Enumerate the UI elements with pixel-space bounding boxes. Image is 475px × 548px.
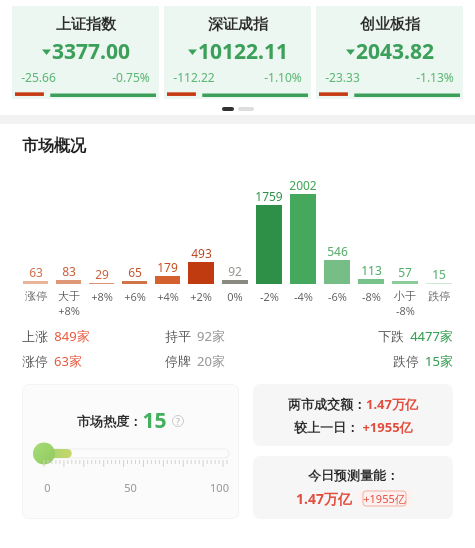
button[interactable]: 上证指数: [12, 6, 159, 99]
staticText: 15: [142, 406, 167, 435]
staticText: 15: [432, 266, 446, 282]
button[interactable]: 市场热度：: [22, 384, 239, 519]
staticText: 跌停: [428, 289, 450, 303]
button[interactable]: 两市成交额：: [253, 384, 453, 446]
staticText: 65: [128, 264, 142, 280]
staticText: 3377.00: [52, 37, 130, 66]
staticText: -4%: [294, 289, 313, 304]
staticText: 2002: [289, 177, 317, 193]
staticText: 63: [29, 264, 43, 280]
staticText: 下跌: [378, 328, 404, 344]
staticText: 92家: [197, 327, 225, 345]
staticText: 113: [361, 262, 382, 278]
staticText: 4477家: [410, 327, 453, 345]
staticText: 涨停: [25, 289, 47, 303]
staticText: -25.66: [21, 69, 56, 85]
staticText: -1.13%: [416, 69, 454, 85]
button[interactable]: 热度说明: [172, 415, 184, 427]
staticText: 市场热度：: [77, 413, 142, 429]
staticText: +2%: [190, 289, 212, 304]
button[interactable]: 深证成指: [164, 6, 311, 99]
staticText: 较上一日：: [294, 419, 359, 435]
staticText: -1.10%: [264, 69, 302, 85]
staticText: -112.22: [173, 69, 215, 85]
staticText: -0.75%: [112, 69, 150, 85]
staticText: 29: [95, 266, 109, 282]
staticText: -23.33: [325, 69, 360, 85]
staticText: 1.47万亿: [296, 489, 352, 508]
staticText: 50: [124, 480, 137, 495]
staticText: +8%: [58, 303, 80, 318]
staticText: 2043.82: [356, 37, 434, 66]
staticText: 83: [62, 263, 76, 279]
staticText: 92: [228, 263, 242, 279]
staticText: 15家: [425, 352, 453, 370]
staticText: ?: [176, 416, 180, 427]
staticText: 两市成交额：: [288, 396, 366, 412]
staticText: +8%: [91, 289, 113, 304]
staticText: 63家: [54, 352, 82, 370]
staticText: 上证指数: [56, 15, 116, 34]
staticText: 20家: [197, 352, 225, 370]
staticText: 今日预测量能：: [308, 467, 399, 483]
staticText: 849家: [54, 327, 90, 345]
staticText: 上涨: [22, 328, 48, 344]
staticText: 持平: [165, 328, 191, 344]
staticText: 493: [191, 245, 212, 261]
staticText: 创业板指: [360, 15, 420, 34]
staticText: 179: [157, 259, 178, 275]
staticText: -2%: [260, 289, 279, 304]
staticText: 10122.11: [198, 37, 288, 66]
staticText: 深证成指: [208, 15, 268, 34]
staticText: 57: [398, 264, 412, 280]
staticText: 546: [327, 243, 348, 259]
staticText: +1955亿: [362, 418, 413, 436]
staticText: 大于: [58, 289, 80, 303]
staticText: 跌停: [393, 353, 419, 369]
staticText: -6%: [328, 289, 347, 304]
staticText: 市场概况: [22, 136, 86, 156]
button[interactable]: 今日预测量能：: [253, 456, 453, 519]
staticText: 0%: [227, 289, 243, 304]
staticText: +1955亿: [363, 491, 406, 506]
staticText: 1759: [255, 188, 283, 204]
button[interactable]: 创业板指: [316, 6, 463, 99]
staticText: 小于: [394, 289, 416, 303]
staticText: -8%: [362, 289, 381, 304]
staticText: 涨停: [22, 353, 48, 369]
staticText: 100: [210, 480, 229, 495]
staticText: +4%: [157, 289, 179, 304]
staticText: 1.47万亿: [366, 395, 418, 413]
staticText: -8%: [396, 303, 415, 318]
staticText: 停牌: [165, 353, 191, 369]
staticText: 0: [44, 480, 51, 495]
staticText: +6%: [124, 289, 146, 304]
